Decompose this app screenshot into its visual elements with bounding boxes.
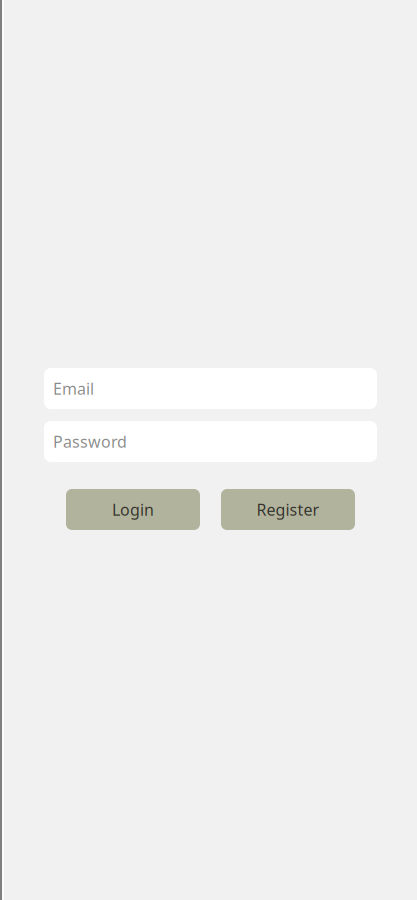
- button[interactable]: Login: [66, 489, 200, 530]
- button[interactable]: Password: [44, 421, 377, 462]
- staticText: Password: [53, 431, 127, 452]
- staticText: Email: [53, 378, 94, 399]
- staticText: Register: [256, 499, 319, 520]
- button[interactable]: Email: [44, 368, 377, 409]
- button[interactable]: Register: [221, 489, 355, 530]
- staticText: Login: [112, 499, 154, 520]
